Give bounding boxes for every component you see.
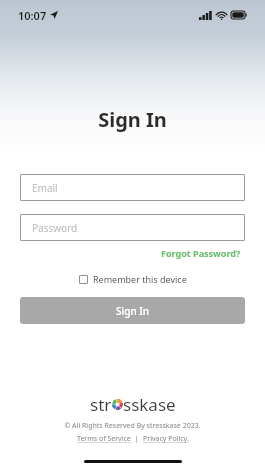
staticText: Forgot Password? bbox=[161, 247, 241, 259]
staticText: Privacy Policy. bbox=[143, 434, 189, 444]
staticText: Sign In bbox=[0, 106, 265, 133]
staticText: | bbox=[131, 434, 143, 444]
button[interactable]: Remember this device bbox=[75, 270, 191, 288]
button[interactable]: Password bbox=[20, 214, 245, 241]
button[interactable]: Email bbox=[20, 174, 245, 201]
button[interactable]: Forgot Password? bbox=[159, 245, 243, 261]
button[interactable]: Sign In bbox=[20, 297, 245, 324]
button[interactable]: Privacy Policy. bbox=[143, 434, 189, 444]
staticText: Remember this device bbox=[93, 273, 187, 285]
staticText: Password bbox=[32, 221, 78, 235]
staticText: Email bbox=[32, 181, 58, 195]
staticText: Terms of Service bbox=[77, 434, 131, 444]
staticText: 10:07 bbox=[18, 8, 47, 23]
button[interactable]: Terms of Service bbox=[77, 434, 131, 444]
staticText: Sign In bbox=[116, 304, 150, 318]
staticText: © All Rights Reserved By stresskase 2023… bbox=[64, 421, 201, 431]
staticText: str bbox=[90, 393, 112, 416]
staticText: sskase bbox=[123, 393, 176, 416]
